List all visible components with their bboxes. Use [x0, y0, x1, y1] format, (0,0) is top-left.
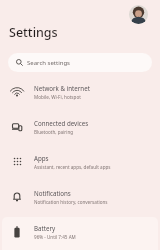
staticText: Notification history, conversations — [34, 199, 108, 205]
button[interactable]: Network & internet — [0, 74, 160, 109]
staticText: Apps — [34, 154, 49, 162]
staticText: Connected devices — [34, 119, 89, 127]
staticText: Search settings — [27, 59, 70, 67]
button[interactable]: Connected devices — [0, 109, 160, 144]
button[interactable]: Battery — [0, 214, 160, 249]
staticText: Mobile, Wi-Fi, hotspot — [34, 94, 81, 100]
staticText: Battery — [34, 224, 56, 232]
button[interactable] — [129, 5, 148, 24]
staticText: Assistant, recent apps, default apps — [34, 164, 111, 170]
staticText: Bluetooth, pairing — [34, 129, 74, 135]
button[interactable]: Notifications — [0, 179, 160, 214]
staticText: 96% - Until 7:45 AM — [34, 234, 76, 240]
staticText: Network & internet — [34, 84, 90, 92]
staticText: Settings — [9, 24, 58, 41]
button[interactable]: Apps — [0, 144, 160, 179]
staticText: Notifications — [34, 189, 71, 197]
button[interactable]: Search settings — [8, 53, 152, 72]
